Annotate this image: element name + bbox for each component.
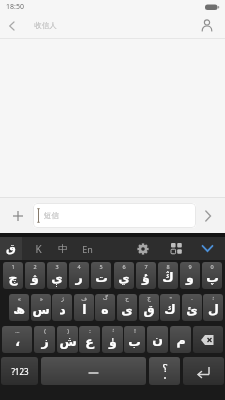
staticText: ش — [59, 334, 77, 349]
button[interactable] — [196, 237, 218, 260]
staticText: ر — [75, 270, 83, 285]
button[interactable]: 短信 — [33, 203, 196, 228]
staticText: گ — [103, 295, 108, 301]
staticText: 8 — [166, 263, 170, 270]
button[interactable]: 8 — [158, 262, 178, 289]
button[interactable]: 0 — [202, 262, 222, 289]
button[interactable]: 收信人 — [0, 14, 225, 38]
staticText: ا — [82, 302, 87, 317]
staticText: پ — [206, 270, 219, 285]
button[interactable]: ج — [139, 294, 159, 321]
button[interactable]: : — [79, 326, 100, 353]
staticText: ؟ — [162, 362, 168, 374]
staticText: ئ — [186, 302, 198, 317]
staticText: K — [35, 242, 42, 256]
button[interactable]: ؛ — [203, 294, 223, 321]
staticText: ؛ — [212, 295, 214, 301]
staticText: د — [59, 302, 66, 317]
button[interactable]: ؛ — [102, 326, 123, 353]
button[interactable] — [132, 237, 154, 260]
button[interactable] — [198, 203, 218, 228]
staticText: ژ — [61, 295, 64, 301]
staticText: ح — [125, 295, 129, 301]
staticText: 中 — [58, 243, 68, 255]
staticText: 3 — [55, 263, 59, 270]
button[interactable] — [193, 326, 223, 353]
button[interactable]: 9 — [180, 262, 200, 289]
staticText: ي — [118, 270, 130, 285]
staticText: ( — [44, 327, 46, 334]
staticText: 2 — [33, 263, 37, 270]
staticText: 短信 — [44, 211, 59, 220]
button[interactable]: En — [75, 237, 99, 260]
staticText: ن — [152, 332, 163, 347]
button[interactable]: … — [2, 326, 32, 353]
button[interactable]: ( — [34, 326, 55, 353]
button[interactable]: 3 — [47, 262, 67, 289]
button[interactable]: K — [27, 237, 49, 260]
staticText: 1 — [11, 263, 15, 270]
button[interactable]: " — [160, 294, 180, 321]
staticText: ې — [51, 270, 63, 285]
staticText: » — [40, 295, 43, 302]
staticText: ! — [134, 327, 136, 334]
staticText: ب — [128, 334, 141, 349]
staticText: ل — [208, 302, 219, 317]
staticText: ز — [41, 334, 49, 349]
staticText: ھ — [13, 302, 25, 317]
staticText: 6 — [122, 263, 126, 270]
staticText: ۈ — [109, 334, 117, 349]
button[interactable]: 中 — [51, 237, 74, 260]
button[interactable]: · — [182, 294, 202, 321]
button[interactable]: ح — [117, 294, 137, 321]
button[interactable]: 7 — [136, 262, 156, 289]
staticText: 18:50 — [6, 2, 24, 12]
button[interactable]: گ — [95, 294, 115, 321]
staticText: 收信人 — [34, 21, 57, 30]
staticText: 9 — [188, 263, 192, 270]
button[interactable] — [165, 237, 187, 260]
staticText: ۋ — [31, 270, 39, 285]
staticText: ڭ — [162, 270, 174, 285]
button[interactable]: ق — [0, 237, 22, 260]
staticText: En — [82, 243, 93, 255]
staticText: ۇ — [142, 270, 150, 285]
staticText: ت — [95, 270, 108, 285]
button[interactable]: ژ — [52, 294, 72, 321]
staticText: ى — [121, 302, 133, 317]
staticText: 5 — [99, 263, 103, 270]
staticText: ج — [147, 295, 151, 301]
staticText: س — [32, 302, 50, 317]
button[interactable] — [41, 357, 146, 385]
staticText: ، — [15, 334, 20, 349]
staticText: : — [89, 327, 91, 334]
staticText: 0 — [210, 263, 214, 270]
button[interactable]: » — [31, 294, 51, 321]
button[interactable]: 2 — [25, 262, 45, 289]
button[interactable]: 5 — [91, 262, 111, 289]
staticText: و — [186, 270, 194, 285]
staticText: ع — [85, 334, 94, 349]
staticText: 4 — [77, 263, 81, 270]
button[interactable]: 4 — [69, 262, 89, 289]
button[interactable]: ?123 — [1, 357, 38, 385]
button[interactable] — [6, 203, 30, 228]
staticText: ق — [6, 242, 16, 255]
staticText: م — [176, 332, 186, 347]
button[interactable] — [183, 357, 224, 385]
button[interactable]: « — [9, 294, 29, 321]
button[interactable]: ! — [124, 326, 145, 353]
button[interactable]: ) — [57, 326, 78, 353]
button[interactable]: 1 — [3, 262, 23, 289]
staticText: « — [18, 295, 21, 302]
button[interactable]: ف — [74, 294, 94, 321]
staticText: ك — [164, 302, 176, 317]
staticText: ?123 — [11, 366, 29, 377]
staticText: ف — [81, 295, 87, 301]
button[interactable]: ؟ — [149, 357, 180, 385]
staticText: چ — [8, 270, 18, 285]
staticText: · — [191, 295, 193, 302]
button[interactable]: ن — [147, 326, 168, 353]
button[interactable]: 6 — [114, 262, 134, 289]
button[interactable]: م — [170, 326, 191, 353]
